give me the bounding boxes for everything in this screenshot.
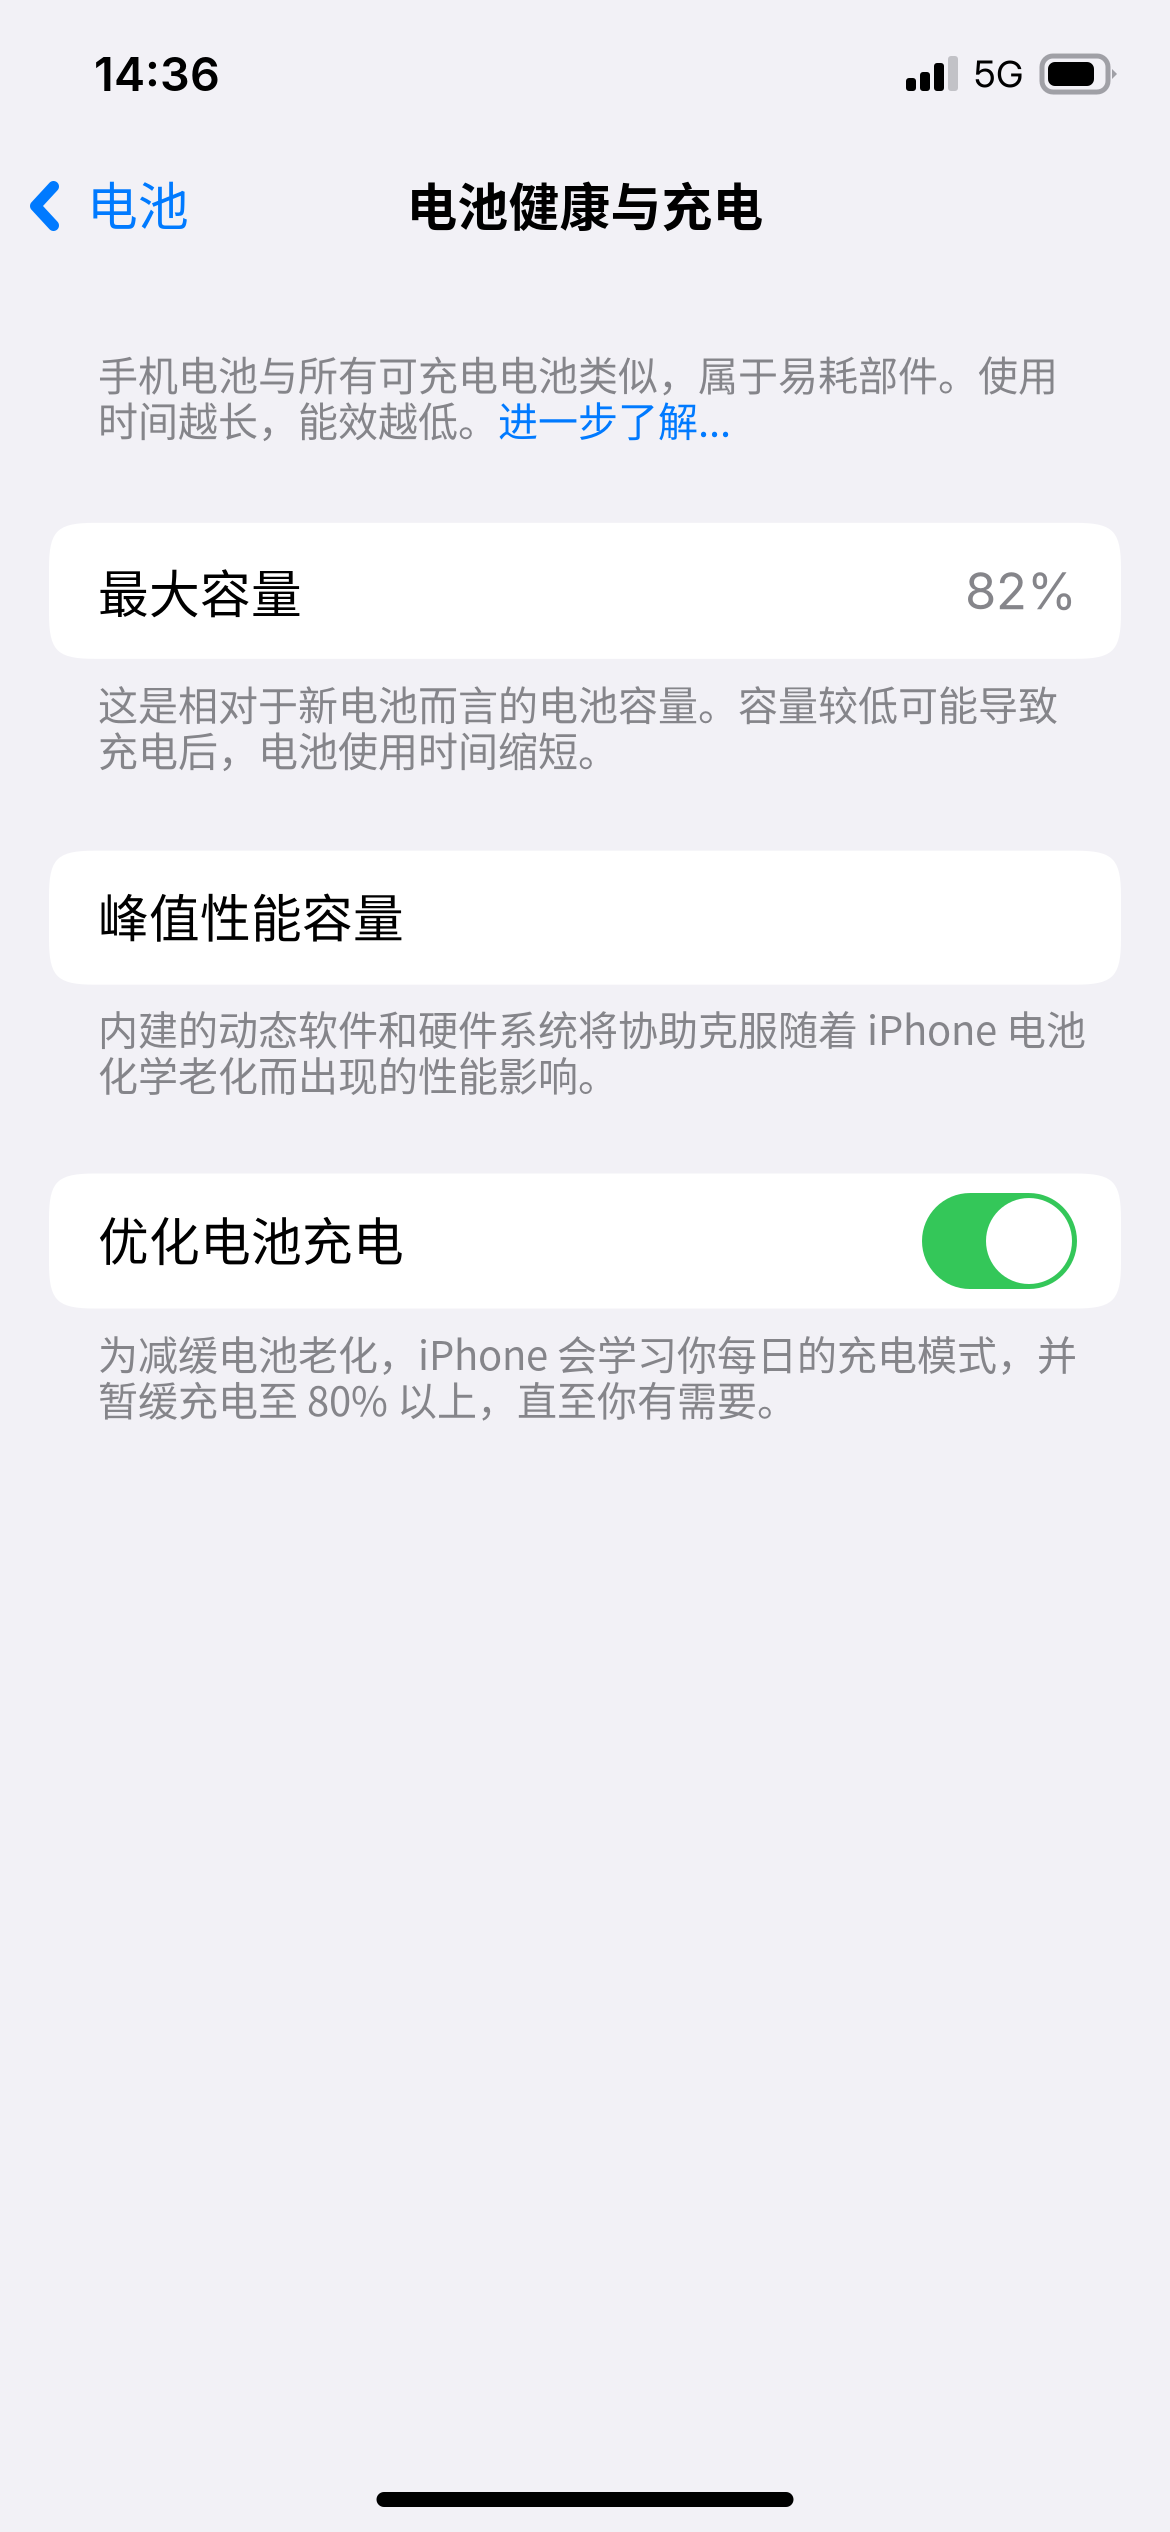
staticText: 化学老化而出现的性能影响。 <box>98 1045 618 1102</box>
staticText: 峰值性能容量 <box>98 878 404 952</box>
staticText: 最大容量 <box>98 554 302 628</box>
staticText: 充电后，电池使用时间缩短。 <box>98 720 618 778</box>
staticText: 为减缓电池老化，iPhone 会学习你每日的充电模式，并 <box>98 1323 1077 1381</box>
staticText: 14:36 <box>94 46 220 102</box>
staticText: 手机电池与所有可充电电池类似，属于易耗部件。使用 <box>98 344 1058 402</box>
staticText: 内建的动态软件和硬件系统将协助克服随着 iPhone 电池 <box>98 999 1086 1057</box>
staticText: 5G <box>974 51 1023 97</box>
staticText: 这是相对于新电池而言的电池容量。容量较低可能导致 <box>98 674 1058 732</box>
staticText: 82% <box>965 560 1077 621</box>
staticText: 时间越长，能效越低。 <box>98 390 498 448</box>
staticText: 电池健康与充电 <box>406 167 763 241</box>
button[interactable]: 峰值性能容量 <box>0 851 1170 985</box>
button[interactable]: 优化电池充电，已开启 <box>0 1173 1170 1308</box>
button[interactable]: 进一步了解... <box>498 390 731 448</box>
staticText: 电池 <box>87 166 189 240</box>
staticText: 优化电池充电 <box>98 1202 404 1275</box>
staticText: 进一步了解... <box>498 390 731 448</box>
staticText: 暂缓充电至 80% 以上，直至你有需要。 <box>98 1369 797 1427</box>
button[interactable]: 电池 <box>0 138 189 266</box>
button[interactable]: 最大容量 <box>0 523 1170 659</box>
